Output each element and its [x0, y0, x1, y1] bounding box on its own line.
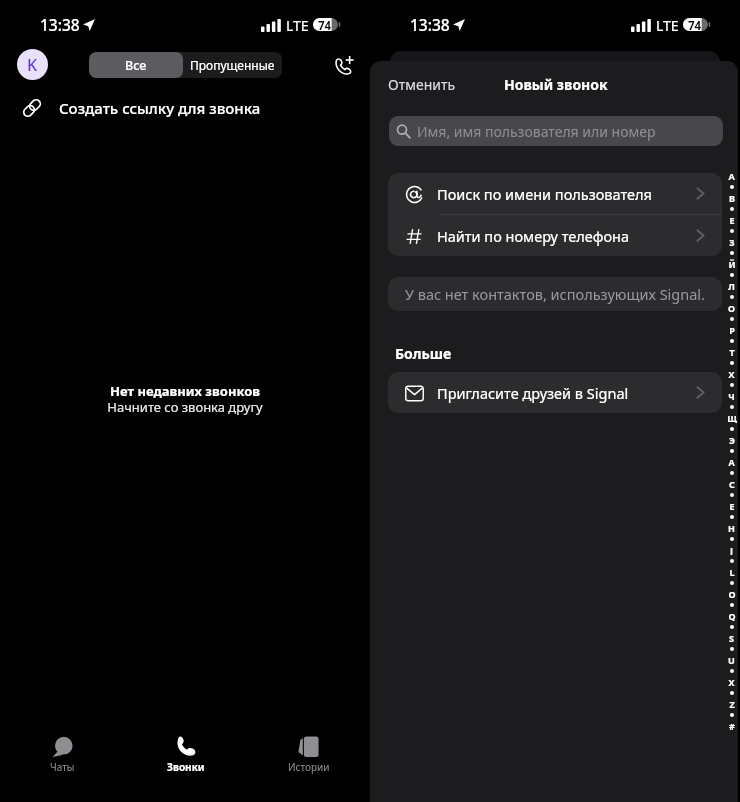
- staticText: Л: [728, 280, 735, 291]
- staticText: 13:38: [40, 14, 80, 35]
- staticText: У вас нет контактов, использующих Signal…: [405, 284, 705, 304]
- staticText: Q: [728, 610, 736, 621]
- staticText: Х: [728, 368, 735, 379]
- staticText: Р: [729, 324, 735, 335]
- button[interactable]: Поиск по имени пользователя: [388, 173, 722, 214]
- button[interactable]: Пригласите друзей в Signal: [388, 372, 722, 413]
- button[interactable]: Создать ссылку для звонка: [0, 90, 370, 126]
- staticText: S: [729, 632, 734, 643]
- staticText: J: [730, 544, 733, 555]
- staticText: З: [729, 236, 735, 247]
- staticText: K: [27, 54, 38, 76]
- staticText: Ч: [728, 390, 735, 401]
- staticText: Й: [728, 258, 736, 269]
- staticText: U: [728, 654, 735, 665]
- staticText: Найти по номеру телефона: [437, 226, 630, 246]
- staticText: LTE: [286, 16, 309, 35]
- staticText: Пригласите друзей в Signal: [437, 383, 629, 403]
- button[interactable]: Alphabet index: [723, 170, 740, 731]
- staticText: 13:38: [410, 14, 450, 35]
- staticText: L: [729, 566, 735, 577]
- staticText: #: [729, 720, 735, 731]
- staticText: В: [729, 192, 735, 203]
- button[interactable]: Все: [89, 52, 183, 78]
- staticText: 74: [688, 18, 702, 30]
- button[interactable]: Звонки: [124, 722, 247, 802]
- button[interactable]: Чаты: [0, 722, 124, 802]
- button[interactable]: Отменить: [388, 75, 456, 94]
- staticText: Имя, имя пользователя или номер: [417, 122, 656, 141]
- staticText: Чаты: [50, 760, 75, 774]
- staticText: Истории: [288, 760, 330, 774]
- staticText: Новый звонок: [504, 75, 608, 94]
- button[interactable]: Имя, имя пользователя или номер: [389, 116, 723, 146]
- button[interactable]: Пропущенные: [183, 52, 282, 78]
- staticText: Э: [729, 434, 735, 445]
- button[interactable]: Найти по номеру телефона: [388, 215, 722, 256]
- button[interactable]: New call: [326, 48, 360, 82]
- staticText: Отменить: [388, 75, 456, 94]
- button[interactable]: Profile: [17, 49, 48, 80]
- staticText: О: [728, 302, 735, 313]
- staticText: X: [728, 676, 735, 687]
- button[interactable]: Истории: [247, 722, 370, 802]
- staticText: H: [728, 522, 735, 533]
- staticText: Поиск по имени пользователя: [437, 184, 652, 204]
- staticText: Начните со звонка другу: [107, 398, 263, 416]
- staticText: Создать ссылку для звонка: [59, 98, 261, 118]
- staticText: LTE: [656, 16, 679, 35]
- staticText: A: [728, 456, 735, 467]
- staticText: Больше: [395, 344, 452, 363]
- staticText: А: [728, 170, 735, 181]
- staticText: Нет недавних звонков: [110, 382, 260, 400]
- staticText: O: [728, 588, 736, 599]
- staticText: Все: [125, 57, 147, 74]
- staticText: Z: [729, 698, 735, 709]
- staticText: 74: [318, 18, 332, 30]
- staticText: Пропущенные: [190, 57, 275, 73]
- staticText: C: [729, 478, 735, 489]
- staticText: Звонки: [167, 760, 205, 774]
- staticText: E: [729, 500, 735, 511]
- staticText: Т: [729, 346, 735, 357]
- staticText: Щ: [727, 412, 737, 423]
- staticText: Е: [729, 214, 735, 225]
